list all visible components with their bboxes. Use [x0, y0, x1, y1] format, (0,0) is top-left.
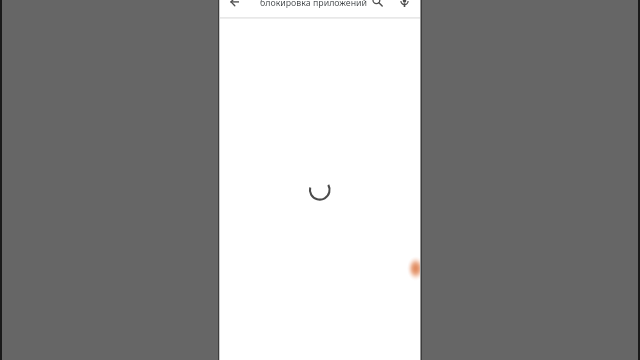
- button[interactable]: Voice search: [392, 0, 416, 13]
- staticText: блокировка приложений: [260, 0, 368, 9]
- button[interactable]: Search: [364, 0, 388, 13]
- button[interactable]: Back: [219, 0, 242, 13]
